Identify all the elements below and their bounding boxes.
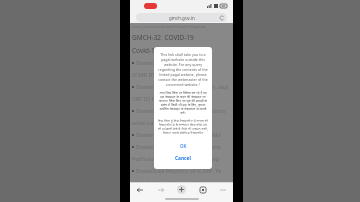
staticText: Download Covid Test Report .asp ks xyxy=(136,83,231,91)
staticText: SRF ID based report release xyxy=(132,95,210,103)
button[interactable]: gmch.gov.in xyxy=(136,13,227,22)
staticText: Pathology ICMR NABL Testing xyxy=(132,155,219,163)
staticText: gmch.gov.in xyxy=(169,15,195,21)
staticText: Download Covid-19 Test reports xyxy=(136,107,226,115)
staticText: Download Covid-19 Rapid Test xyxy=(136,143,221,151)
staticText: Covid-19 Vaccine related. xyxy=(132,46,209,55)
button[interactable]: OK xyxy=(174,141,193,151)
staticText: Download Sample Reports Mo xyxy=(136,131,222,139)
staticText: wide Lab number search xyxy=(132,119,202,127)
staticText: ICMR RTPCR Testing xyxy=(132,71,189,79)
button[interactable]: Forward xyxy=(156,185,166,195)
button[interactable]: Cancel xyxy=(169,153,197,164)
button[interactable]: Back xyxy=(135,185,145,195)
staticText: GMCH-32 COVID-19 Information xyxy=(132,33,231,42)
staticText: ਇਸ ਲਿੰਕ ਨੂੰ ਇਸ ਵੈਬਸਾਈਟ ਤੋਂ ਬਾਹਰ ਦੀ ਵੈਬਸਾ… xyxy=(158,118,208,135)
staticText: Cancel xyxy=(175,155,191,162)
staticText: Download Result of ICMR ANTIGEN xyxy=(136,59,231,67)
staticText: आप जिस लिंक पर क्लिक कर रहे हैं वह इस वे… xyxy=(158,90,208,115)
staticText: Download Reports of ICMR Te xyxy=(136,167,222,175)
button[interactable]: Menu xyxy=(218,185,228,195)
other: Reload xyxy=(220,16,224,20)
button[interactable]: Tabs xyxy=(198,185,208,195)
staticText: OK xyxy=(180,143,187,149)
staticText: This link shall take you to a pagal webs… xyxy=(158,52,208,87)
button[interactable]: New tab xyxy=(176,184,187,195)
staticText: vices, Community and Private Hospitals xyxy=(132,24,206,29)
